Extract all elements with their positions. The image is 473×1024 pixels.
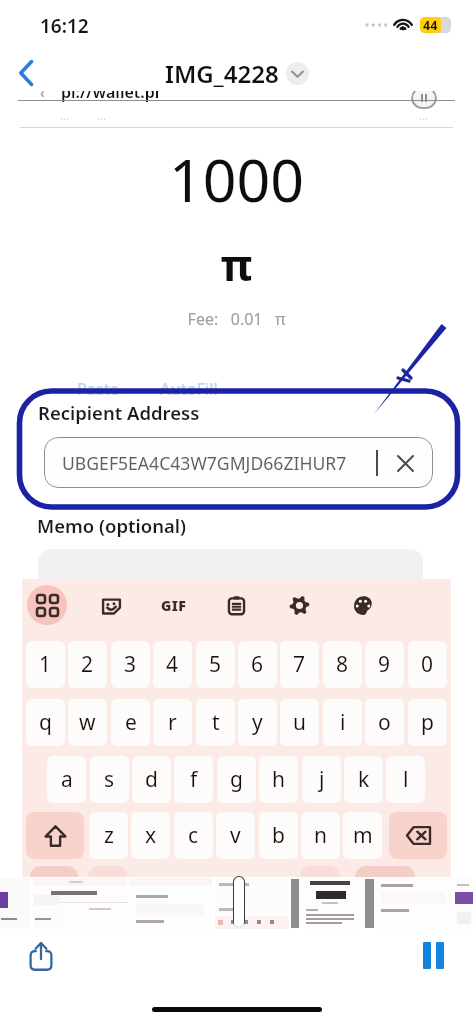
button[interactable]: c: [174, 812, 213, 859]
button[interactable]: o: [365, 699, 404, 746]
staticText: e: [125, 708, 137, 737]
button[interactable]: 4: [153, 641, 192, 688]
staticText: Paste: [77, 378, 120, 400]
button[interactable]: v: [216, 812, 255, 859]
staticText: ⋯: [60, 114, 69, 124]
staticText: g: [230, 765, 243, 794]
button[interactable]: r: [153, 699, 192, 746]
staticText: n: [314, 821, 327, 850]
button[interactable]: a: [47, 756, 86, 803]
button[interactable]: 6: [238, 641, 277, 688]
button[interactable]: Backspace: [389, 812, 447, 859]
staticText: q: [39, 708, 52, 737]
button[interactable]: i: [323, 699, 362, 746]
staticText: m: [353, 821, 373, 850]
button[interactable]: j: [302, 756, 341, 803]
button[interactable]: 3: [111, 641, 150, 688]
button[interactable]: Pause: [410, 932, 456, 978]
staticText: y: [252, 708, 263, 737]
button[interactable]: n: [301, 812, 340, 859]
staticText: π: [0, 235, 473, 294]
button[interactable]: 8: [323, 641, 362, 688]
staticText: b: [272, 821, 285, 850]
staticText: d: [145, 765, 158, 794]
button[interactable]: 5: [196, 641, 235, 688]
button[interactable]: 7: [280, 641, 319, 688]
staticText: t: [212, 708, 220, 737]
button[interactable]: 9: [365, 641, 404, 688]
button[interactable]: w: [68, 699, 107, 746]
button[interactable]: Themes: [343, 585, 383, 625]
staticText: AutoFill: [160, 378, 218, 400]
staticText: w: [79, 708, 96, 737]
staticText: 0: [421, 650, 434, 679]
button[interactable]: 0: [408, 641, 447, 688]
button[interactable]: m: [343, 812, 382, 859]
staticText: v: [230, 821, 241, 850]
button[interactable]: 1: [26, 641, 65, 688]
staticText: z: [104, 821, 114, 850]
button[interactable]: 2: [68, 641, 107, 688]
staticText: GIF: [161, 596, 187, 615]
button[interactable]: Shift: [26, 812, 84, 859]
button[interactable]: Share: [18, 932, 64, 978]
staticText: IMG_4228: [165, 57, 279, 90]
staticText: x: [145, 821, 157, 850]
button[interactable]: d: [132, 756, 171, 803]
button[interactable]: h: [259, 756, 298, 803]
button[interactable]: p: [408, 699, 447, 746]
staticText: u: [293, 708, 306, 737]
button[interactable]: b: [259, 812, 298, 859]
staticText: ‹: [40, 91, 45, 102]
staticText: h: [272, 765, 285, 794]
button[interactable]: UBGEF5EA4C43W7GMJD66ZIHUR7: [44, 437, 433, 488]
staticText: c: [188, 821, 199, 850]
staticText: r: [168, 708, 177, 737]
staticText: pi://wallet.pi: [61, 91, 160, 103]
staticText: o: [378, 708, 391, 737]
staticText: UBGEF5EA4C43W7GMJD66ZIHUR7: [62, 451, 347, 475]
button[interactable]: x: [131, 812, 170, 859]
button[interactable]: g: [217, 756, 256, 803]
staticText: 1: [39, 650, 52, 679]
button[interactable]: z: [89, 812, 128, 859]
staticText: k: [358, 765, 370, 794]
button[interactable]: Back: [5, 52, 47, 94]
staticText: ⋯: [97, 114, 106, 124]
staticText: 2: [81, 650, 94, 679]
button[interactable]: Stickers: [91, 585, 131, 625]
button[interactable]: Photo options: [286, 62, 309, 85]
staticText: 1000: [0, 139, 473, 219]
button[interactable]: t: [196, 699, 235, 746]
staticText: 9: [378, 650, 391, 679]
button[interactable]: Settings: [279, 585, 319, 625]
button[interactable]: GIF: [156, 587, 192, 623]
staticText: Fee: 0.01 π: [0, 308, 473, 330]
button[interactable]: k: [344, 756, 383, 803]
staticText: a: [61, 765, 73, 794]
staticText: f: [190, 765, 198, 794]
staticText: 44: [423, 17, 438, 33]
button[interactable]: Clipboard: [216, 585, 256, 625]
staticText: 5: [209, 650, 222, 679]
staticText: 16:12: [40, 13, 89, 39]
button[interactable]: u: [280, 699, 319, 746]
staticText: ⋯: [419, 114, 428, 124]
staticText: Recipient Address: [38, 400, 200, 425]
button[interactable]: f: [174, 756, 213, 803]
button[interactable]: Clear text: [387, 445, 423, 481]
button[interactable]: Apps: [27, 585, 67, 625]
staticText: 7: [293, 650, 306, 679]
button[interactable]: y: [238, 699, 277, 746]
button[interactable]: e: [111, 699, 150, 746]
button[interactable]: s: [90, 756, 129, 803]
staticText: p: [421, 708, 434, 737]
staticText: 8: [336, 650, 349, 679]
staticText: i: [340, 708, 346, 737]
staticText: j: [319, 765, 325, 794]
button[interactable]: q: [26, 699, 65, 746]
staticText: 6: [251, 650, 264, 679]
staticText: Memo (optional): [37, 513, 186, 538]
button[interactable]: l: [386, 756, 425, 803]
staticText: 4: [166, 650, 179, 679]
